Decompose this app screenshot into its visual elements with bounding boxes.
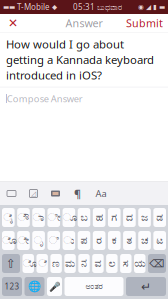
button[interactable]: Next keyboard	[24, 277, 44, 296]
button[interactable]: ಡ	[153, 208, 166, 227]
staticText: ೃ	[34, 235, 44, 246]
staticText: How would I go about getting a Kannada k…	[6, 36, 154, 83]
button[interactable]: Text style	[93, 186, 109, 200]
button[interactable]: ೊ	[22, 254, 34, 273]
staticText: 05:31 ಬುಧವಾರ	[73, 2, 122, 12]
staticText: ೈ	[3, 212, 13, 223]
button[interactable]: ಬ	[78, 208, 90, 227]
staticText: ಮ	[65, 258, 75, 269]
button[interactable]: ು	[62, 231, 75, 250]
staticText: ನ	[81, 258, 87, 269]
staticText: 🎤	[48, 281, 60, 292]
button[interactable]: Dictate	[47, 277, 62, 296]
button[interactable]: ೀ	[47, 208, 60, 227]
staticText: T-Mobile	[15, 2, 52, 12]
staticText: ಚ	[141, 235, 148, 246]
button[interactable]: Submit	[121, 14, 168, 32]
button[interactable]: Insert video	[49, 186, 62, 200]
staticText: ಬ	[80, 212, 87, 223]
staticText: ೌ	[17, 212, 29, 223]
button[interactable]: ಣ	[50, 254, 62, 273]
button[interactable]: ೇ	[17, 231, 30, 250]
staticText: ರ	[96, 235, 102, 246]
staticText: ೂ	[62, 212, 75, 223]
staticText: ¶	[74, 186, 81, 201]
staticText: ⇧	[6, 257, 16, 270]
button[interactable]: ೂ	[62, 208, 75, 227]
staticText: ಡ	[156, 212, 163, 223]
staticText: ಯ	[134, 258, 145, 269]
button[interactable]: ಚ	[138, 231, 151, 250]
staticText: ಅಂತರ	[85, 283, 102, 290]
staticText: ▬▬	[3, 3, 15, 11]
button[interactable]: Paragraph	[71, 186, 84, 200]
button[interactable]: ೃ	[32, 231, 45, 250]
button[interactable]: ೌ	[17, 208, 30, 227]
button[interactable]: ಜ	[138, 208, 151, 227]
button[interactable]: ಗ	[108, 208, 121, 227]
staticText: ◿	[31, 190, 36, 197]
button[interactable]: Insert link	[5, 186, 18, 200]
button[interactable]: ತ	[123, 231, 136, 250]
button[interactable]: Space	[64, 277, 123, 296]
button[interactable]: ದ	[123, 208, 136, 227]
staticText: ಹ	[96, 212, 103, 223]
staticText: ತ	[126, 235, 132, 246]
staticText: ಕ	[112, 235, 117, 246]
button[interactable]: ಪ	[78, 231, 90, 250]
staticText: ಣ	[52, 258, 60, 269]
staticText: ಲ	[108, 258, 115, 269]
button[interactable]: ಮ	[64, 254, 76, 273]
button[interactable]: ಟ	[153, 231, 166, 250]
staticText: ಗ	[111, 212, 117, 223]
button[interactable]: ಿ	[47, 231, 60, 250]
button[interactable]: ಹ	[93, 208, 105, 227]
button[interactable]: ರ	[93, 231, 105, 250]
button[interactable]: Close	[0, 14, 26, 32]
staticText: ಸ	[123, 258, 129, 269]
button[interactable]: ೈ	[2, 208, 15, 227]
button[interactable]: ಯ	[134, 254, 145, 273]
staticText: ಜ	[141, 212, 148, 223]
staticText: ◉ ◢ ▮ ▬	[138, 3, 165, 11]
staticText: ವ	[94, 258, 101, 269]
staticText: ಿ	[49, 235, 59, 246]
staticText: ದ	[126, 212, 133, 223]
button[interactable]: ೋ	[2, 231, 15, 250]
staticText: ೋ	[2, 235, 15, 246]
button[interactable]: ಕ	[108, 231, 121, 250]
button[interactable]: ೆ	[36, 254, 48, 273]
staticText: ೇ	[18, 235, 29, 246]
button[interactable]: Numbers	[2, 277, 22, 296]
button[interactable]: ಲ	[106, 254, 118, 273]
staticText: Aa	[95, 187, 106, 200]
staticText: ↵	[141, 280, 151, 293]
staticText: ೆ	[38, 258, 46, 269]
staticText: 123	[4, 281, 19, 292]
staticText: Submit	[126, 16, 163, 30]
staticText: ⌫	[149, 257, 164, 269]
button[interactable]: Shift	[2, 254, 20, 273]
button[interactable]: ಸ	[120, 254, 131, 273]
staticText: ೊ	[22, 258, 34, 269]
staticText: ಾ	[33, 212, 45, 223]
button[interactable]: Delete	[148, 254, 166, 273]
staticText: Answer	[65, 16, 102, 30]
staticText: 🌐	[28, 280, 41, 293]
staticText: ◆	[52, 3, 57, 11]
button[interactable]: ಾ	[32, 208, 45, 227]
button[interactable]: Insert image	[27, 186, 40, 200]
button[interactable]: Return	[126, 277, 166, 296]
staticText: Compose Answer	[7, 92, 83, 105]
staticText: ಪ	[80, 235, 87, 246]
staticText: ಟ	[156, 235, 163, 246]
staticText: ು	[63, 235, 74, 246]
staticText: ೀ	[47, 212, 60, 223]
button[interactable]: ನ	[78, 254, 90, 273]
button[interactable]: ವ	[92, 254, 104, 273]
staticText: ✕	[8, 16, 18, 30]
